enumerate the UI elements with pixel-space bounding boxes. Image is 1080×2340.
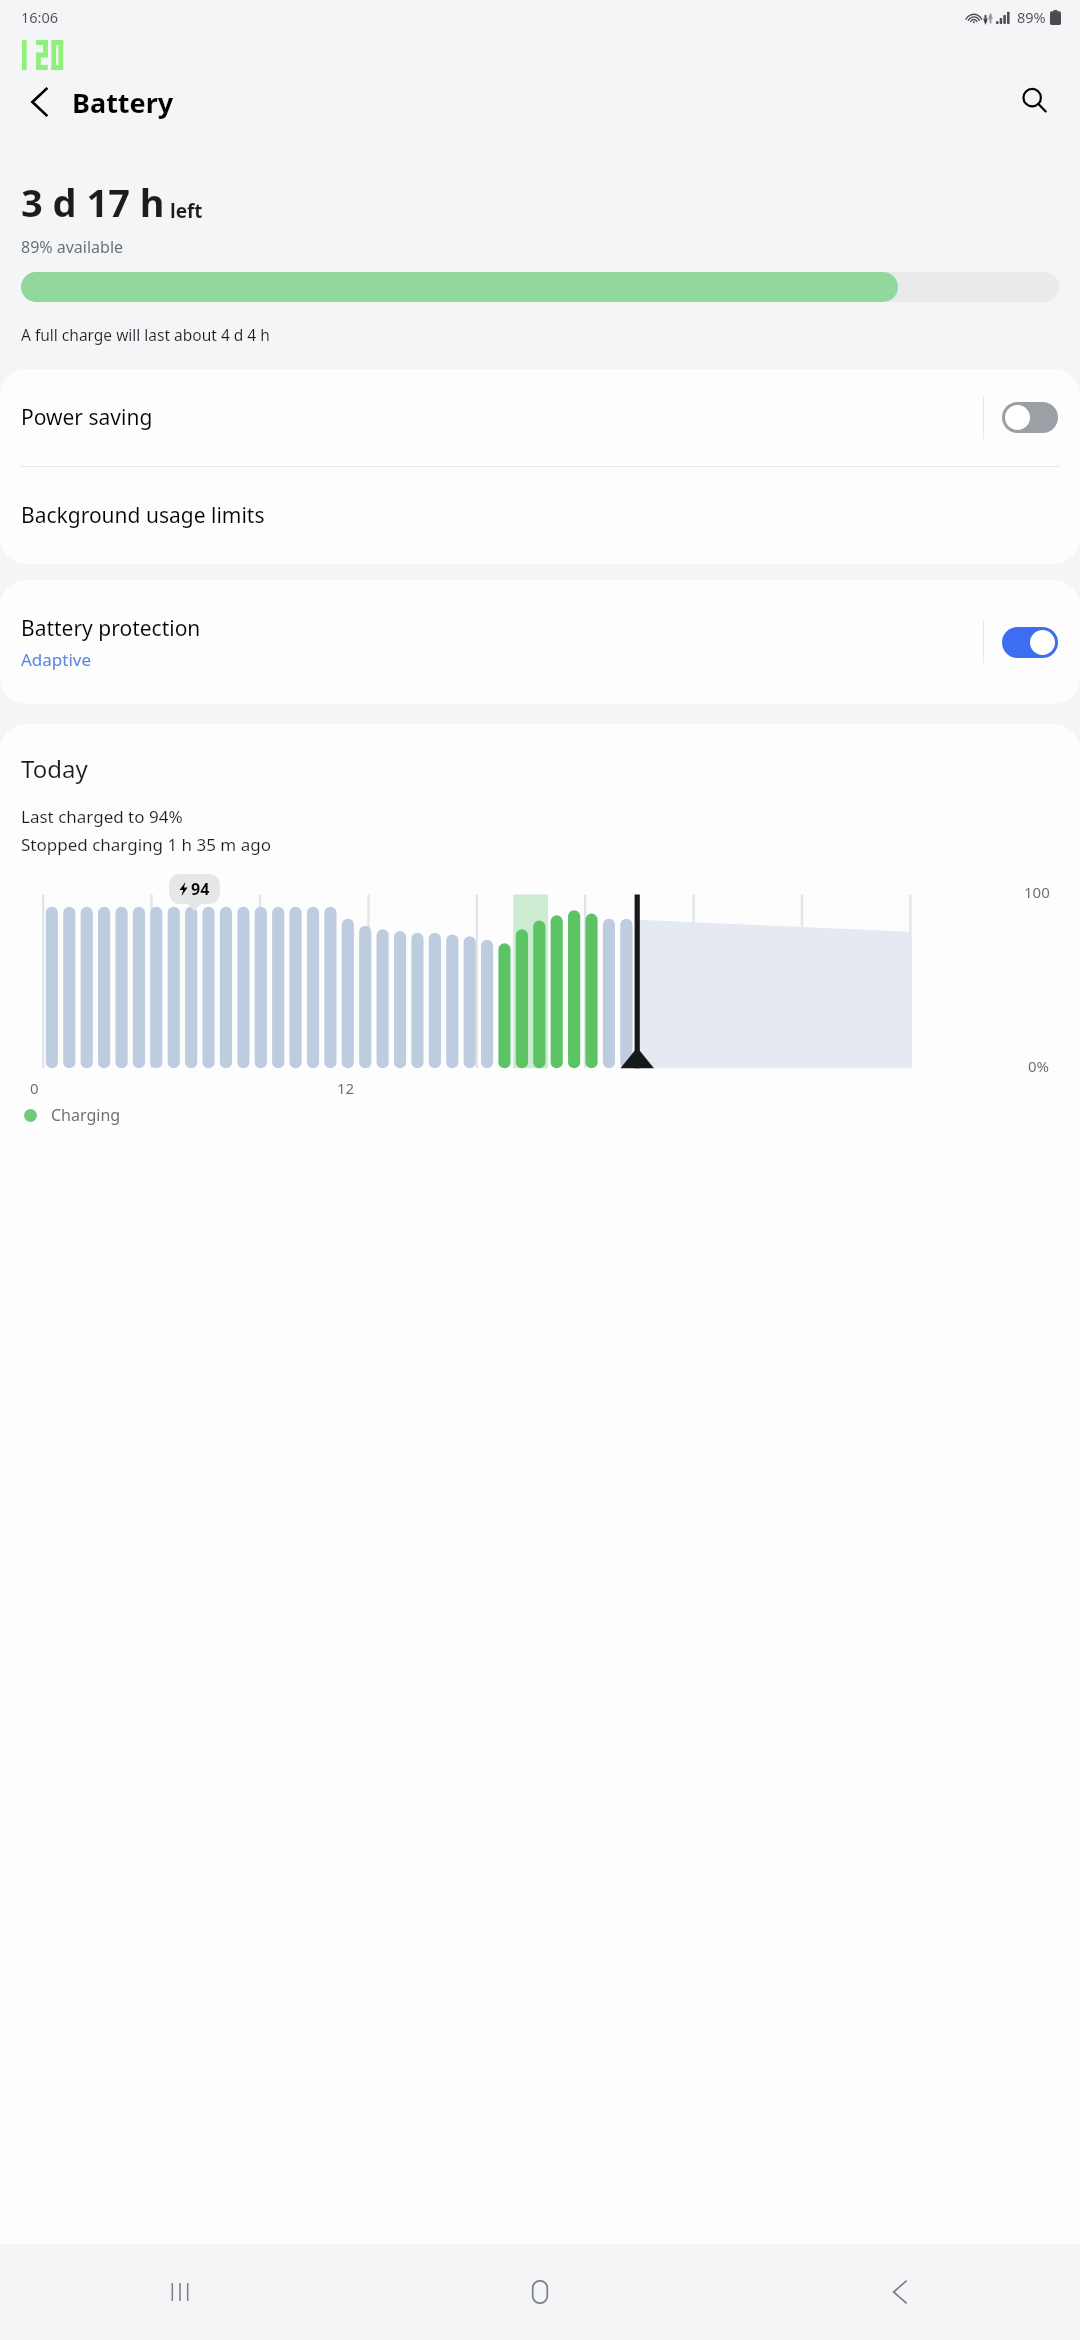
staticText: 94 <box>191 878 210 900</box>
staticText: Battery protection <box>21 614 201 643</box>
staticText: left <box>170 198 203 224</box>
button[interactable]: Off <box>1002 402 1058 433</box>
staticText: 3 d 17 h <box>21 176 165 228</box>
button[interactable]: Background usage limits <box>0 467 1080 564</box>
button[interactable]: Home <box>360 2244 720 2340</box>
staticText: 89% available <box>21 236 124 258</box>
button[interactable]: On <box>1002 627 1058 658</box>
staticText: 89% <box>1017 7 1046 27</box>
staticText: Power saving <box>21 403 983 432</box>
staticText: 12 <box>337 1078 355 1098</box>
button[interactable]: Power saving <box>0 369 1080 466</box>
button[interactable]: Recents <box>0 2244 360 2340</box>
button[interactable]: Search <box>1006 72 1062 128</box>
button[interactable]: Back <box>720 2244 1080 2340</box>
staticText: Last charged to 94% <box>21 805 183 828</box>
staticText: Charging <box>51 1104 121 1126</box>
staticText: Background usage limits <box>21 501 265 530</box>
staticText: 100 <box>1024 882 1050 902</box>
staticText: 0% <box>1028 1056 1050 1076</box>
staticText: Battery <box>72 84 174 121</box>
staticText: Stopped charging 1 h 35 m ago <box>21 833 271 856</box>
staticText: 16:06 <box>21 7 59 27</box>
staticText: 0 <box>30 1078 39 1098</box>
staticText: Today <box>21 752 88 785</box>
staticText: Adaptive <box>21 648 92 671</box>
button[interactable]: Back <box>14 76 66 128</box>
staticText: A full charge will last about 4 d 4 h <box>21 324 270 345</box>
button[interactable]: Battery protection <box>0 580 1080 704</box>
